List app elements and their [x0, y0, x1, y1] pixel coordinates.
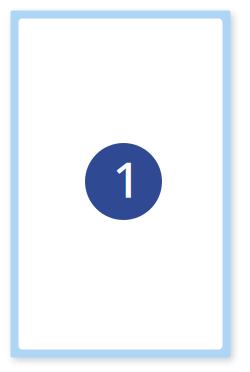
- staticText: 1: [112, 146, 140, 211]
- button[interactable]: Page 1: [10, 10, 230, 357]
